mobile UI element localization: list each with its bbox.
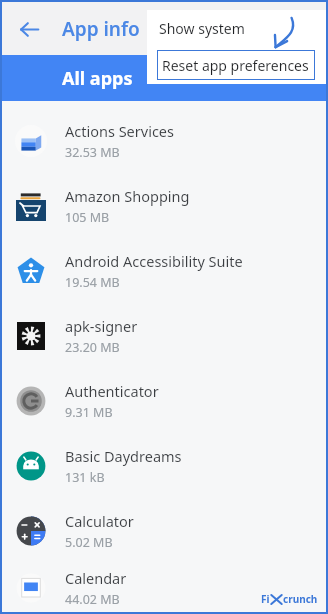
- button[interactable]: Reset app preferences: [157, 50, 315, 80]
- staticText: 23.20 MB: [65, 339, 120, 356]
- button[interactable]: Back: [12, 12, 46, 46]
- staticText: Authenticator: [65, 381, 159, 401]
- button[interactable]: apk-signer: [2, 303, 326, 368]
- button[interactable]: Android Accessibility Suite: [2, 238, 326, 303]
- staticText: 44.02 MB: [65, 591, 120, 608]
- staticText: Fi: [261, 592, 270, 606]
- staticText: Calculator: [65, 511, 134, 531]
- button[interactable]: Amazon Shopping: [2, 173, 326, 238]
- button[interactable]: Basic Daydreams: [2, 433, 326, 498]
- button[interactable]: Show system: [147, 10, 326, 47]
- staticText: Android Accessibility Suite: [65, 251, 243, 271]
- button[interactable]: Calculator: [2, 498, 326, 563]
- staticText: 5.02 MB: [65, 534, 113, 551]
- staticText: Actions Services: [65, 121, 174, 141]
- staticText: 32.53 MB: [65, 144, 120, 161]
- button[interactable]: Calendar: [2, 563, 326, 612]
- staticText: Basic Daydreams: [65, 446, 182, 466]
- staticText: 19.54 MB: [65, 274, 120, 291]
- staticText: 9.31 MB: [65, 404, 113, 421]
- button[interactable]: Actions Services: [2, 108, 326, 173]
- staticText: crunch: [283, 592, 318, 606]
- staticText: Calendar: [65, 568, 127, 588]
- staticText: 105 MB: [65, 209, 110, 226]
- staticText: apk-signer: [65, 316, 138, 336]
- button[interactable]: Authenticator: [2, 368, 326, 433]
- staticText: 131 kB: [65, 469, 105, 486]
- staticText: Show system: [159, 19, 245, 38]
- staticText: Reset app preferences: [162, 56, 309, 75]
- staticText: App info: [62, 16, 140, 42]
- staticText: Amazon Shopping: [65, 186, 190, 206]
- staticText: All apps: [62, 66, 133, 91]
- button[interactable]: All apps: [2, 55, 326, 101]
